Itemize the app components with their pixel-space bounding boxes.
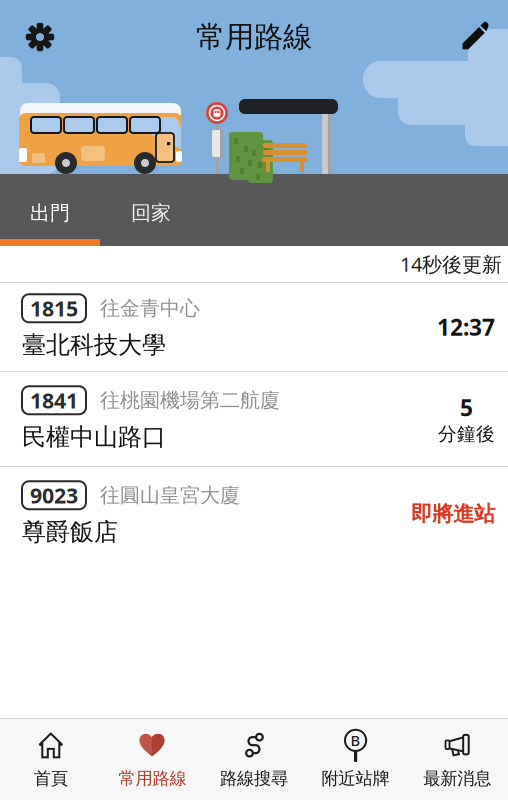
- button[interactable]: 首頁: [0, 722, 102, 796]
- staticText: 常用路線: [196, 19, 312, 55]
- button[interactable]: 1841: [0, 372, 508, 466]
- staticText: 往圓山皇宮大廈: [100, 483, 240, 508]
- button[interactable]: 路線搜尋: [203, 722, 305, 796]
- button[interactable]: 1815: [0, 283, 508, 371]
- staticText: 首頁: [34, 768, 68, 789]
- staticText: 臺北科技大學: [22, 330, 166, 360]
- staticText: 1841: [30, 386, 78, 414]
- staticText: 5: [460, 392, 473, 423]
- staticText: 即將進站: [411, 501, 495, 527]
- staticText: 1815: [30, 294, 78, 322]
- staticText: 尊爵飯店: [22, 517, 118, 547]
- staticText: 回家: [131, 201, 171, 225]
- button[interactable]: 常用路線: [102, 722, 203, 796]
- staticText: 9023: [30, 481, 78, 509]
- staticText: 往金青中心: [100, 296, 200, 321]
- button[interactable]: 回家: [101, 191, 201, 235]
- staticText: 最新消息: [423, 768, 491, 789]
- staticText: 往桃園機場第二航廈: [100, 388, 280, 413]
- button[interactable]: 設定: [18, 15, 62, 59]
- staticText: 出門: [30, 201, 70, 225]
- staticText: 民權中山路口: [22, 422, 166, 452]
- button[interactable]: 最新消息: [406, 722, 508, 796]
- button[interactable]: B: [305, 722, 406, 796]
- button[interactable]: 9023: [0, 467, 508, 561]
- staticText: 分鐘後: [438, 423, 495, 445]
- staticText: B: [351, 731, 361, 750]
- staticText: 常用路線: [118, 768, 186, 789]
- button[interactable]: 出門: [0, 191, 100, 235]
- button[interactable]: 編輯: [453, 13, 497, 57]
- staticText: 12:37: [437, 312, 495, 342]
- staticText: 附近站牌: [322, 768, 390, 789]
- staticText: 路線搜尋: [220, 768, 288, 789]
- staticText: 14秒後更新: [400, 251, 502, 277]
